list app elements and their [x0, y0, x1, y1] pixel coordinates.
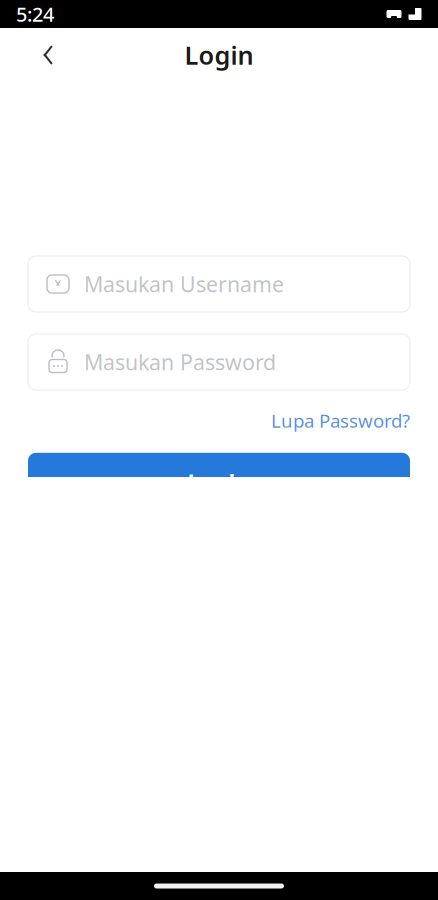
button[interactable]: Lupa Password? — [271, 402, 410, 439]
button[interactable]: Back — [26, 33, 70, 77]
button[interactable]: Masukan Username — [28, 256, 410, 312]
button[interactable]: Login — [28, 453, 410, 513]
button[interactable]: Masukan Password — [28, 334, 410, 390]
staticText: Login — [187, 468, 250, 498]
staticText: Login — [184, 38, 253, 72]
staticText: Masukan Username — [84, 270, 284, 298]
staticText: Masukan Password — [84, 348, 276, 376]
staticText: Lupa Password? — [271, 408, 410, 433]
staticText: 5:24 — [16, 1, 54, 27]
